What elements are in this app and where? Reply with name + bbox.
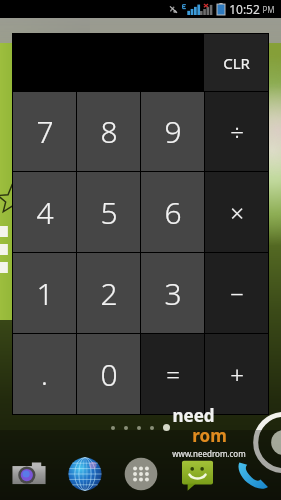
button[interactable]: = [141,334,204,414]
staticText: 5 [100,192,118,233]
button[interactable]: CLR [204,34,268,91]
other: Apps [124,457,158,491]
button[interactable]: 3 [141,253,204,333]
staticText: 0 [100,354,118,395]
button[interactable]: ÷ [205,92,268,171]
button[interactable]: 7 [13,92,76,171]
staticText: = [166,358,180,391]
button[interactable]: Apps [113,457,169,491]
button[interactable]: 5 [77,172,140,252]
other: Camera [11,456,47,492]
other: Messaging [181,458,214,491]
staticText: − [230,277,244,310]
button[interactable]: Phone [225,457,281,491]
button[interactable]: 9 [141,92,204,171]
button[interactable]: + [205,334,268,414]
staticText: rom [192,424,227,447]
button[interactable]: − [205,253,268,333]
staticText: + [230,358,244,391]
button[interactable]: 8 [77,92,140,171]
staticText: 4 [36,192,54,233]
staticText: www.needrom.com [172,448,246,459]
button[interactable]: 4 [13,172,76,252]
button[interactable]: × [205,172,268,252]
button[interactable]: 2 [77,253,140,333]
button[interactable]: . [13,334,76,414]
button[interactable]: 6 [141,172,204,252]
button[interactable]: 1 [13,253,76,333]
staticText: 3 [164,273,182,314]
staticText: 6 [164,192,182,233]
other: Browser [67,456,103,492]
staticText: CLR [223,53,250,73]
staticText: 7 [36,111,54,152]
staticText: 9 [164,111,182,152]
staticText: 1 [36,273,54,314]
staticText: need [172,404,215,427]
staticText: . [41,355,48,393]
button[interactable]: Messaging [169,458,225,491]
other: Phone [236,457,270,491]
button[interactable]: Camera [0,456,57,492]
staticText: 8 [100,111,118,152]
staticText: ÷ [230,115,244,148]
staticText: 10:52 [229,1,260,17]
button[interactable]: Browser [57,456,113,492]
staticText: 2 [100,273,118,314]
button[interactable]: 0 [77,334,140,414]
staticText: × [230,196,244,229]
staticText: PM [262,4,275,15]
